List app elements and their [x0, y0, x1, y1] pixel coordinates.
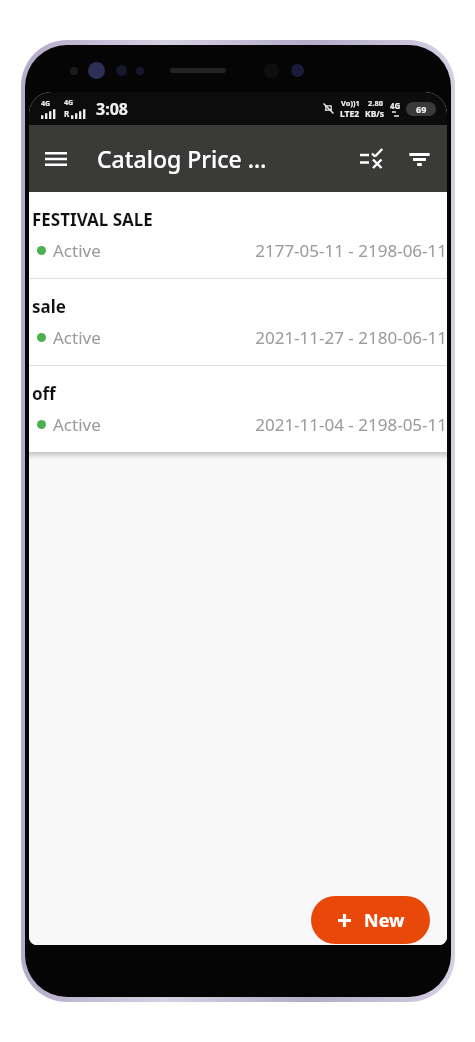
staticText: Active: [53, 413, 101, 436]
button[interactable]: Filter: [395, 135, 443, 183]
staticText: 2.80: [368, 98, 383, 108]
staticText: 2021-11-27 - 2180-06-11: [101, 326, 447, 349]
staticText: 4G: [390, 100, 401, 111]
staticText: Active: [53, 239, 101, 262]
staticText: off: [32, 382, 56, 405]
staticText: 3:08: [96, 98, 128, 120]
staticText: Active: [53, 326, 101, 349]
staticText: 4G: [64, 98, 74, 108]
staticText: 4G: [41, 99, 51, 109]
staticText: LTE2: [340, 108, 360, 120]
button[interactable]: off: [29, 366, 447, 452]
staticText: 2177-05-11 - 2198-06-11: [101, 239, 447, 262]
staticText: FESTIVAL SALE: [32, 208, 153, 231]
staticText: New: [364, 908, 405, 933]
button[interactable]: sale: [29, 279, 447, 365]
button[interactable]: Open navigation menu: [29, 132, 83, 186]
staticText: Catalog Price …: [97, 143, 267, 174]
staticText: Vo))1: [341, 98, 360, 108]
button[interactable]: Select items: [347, 135, 395, 183]
staticText: 69: [416, 103, 427, 115]
staticText: R: [64, 108, 70, 119]
staticText: sale: [32, 295, 66, 318]
staticText: 2021-11-04 - 2198-05-11: [101, 413, 447, 436]
staticText: KB/s: [365, 108, 385, 120]
button[interactable]: New: [311, 896, 430, 944]
button[interactable]: FESTIVAL SALE: [29, 192, 447, 278]
